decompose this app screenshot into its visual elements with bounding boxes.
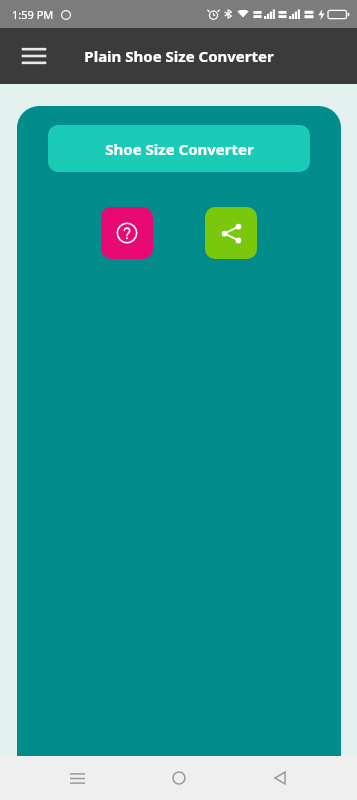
button[interactable]: Shoe Size Converter	[48, 125, 310, 172]
staticText: Shoe Size Converter	[105, 139, 254, 159]
staticText: Plain Shoe Size Converter	[84, 46, 274, 66]
button[interactable]: Share	[205, 207, 257, 259]
button[interactable]: Recent apps	[53, 756, 101, 800]
button[interactable]: Open navigation menu	[12, 34, 56, 78]
staticText: 1:59 PM	[12, 7, 54, 22]
button[interactable]: Help	[101, 207, 153, 259]
button[interactable]: Back	[256, 756, 304, 800]
button[interactable]: Home	[155, 756, 203, 800]
